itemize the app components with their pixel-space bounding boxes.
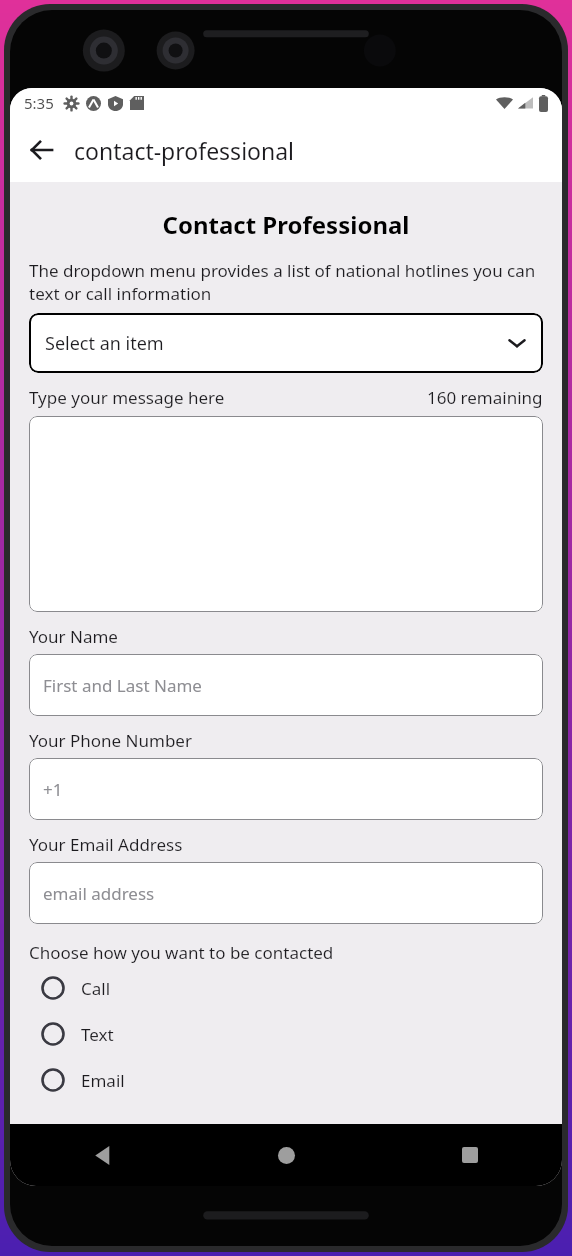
button[interactable] xyxy=(29,416,543,612)
staticText: 160 remaining xyxy=(427,386,543,409)
staticText: First and Last Name xyxy=(43,674,202,697)
staticText: email address xyxy=(43,882,155,905)
staticText: contact-professional xyxy=(74,135,295,166)
staticText: Type your message here xyxy=(29,386,225,409)
staticText: Your Name xyxy=(29,625,118,648)
staticText: Your Phone Number xyxy=(29,729,192,752)
button[interactable]: Back xyxy=(18,126,66,174)
staticText: Text xyxy=(81,1023,114,1046)
button[interactable]: Call xyxy=(29,970,543,1006)
button[interactable]: Recents xyxy=(378,1124,562,1186)
staticText: Select an item xyxy=(45,331,164,356)
staticText: Contact Professional xyxy=(29,208,543,241)
staticText: Your Email Address xyxy=(29,833,183,856)
button[interactable]: +1 xyxy=(29,758,543,820)
staticText: The dropdown menu provides a list of nat… xyxy=(29,259,543,305)
staticText: 5:35 xyxy=(24,93,54,113)
staticText: Email xyxy=(81,1069,125,1092)
staticText: +1 xyxy=(43,778,63,801)
button[interactable]: Home xyxy=(194,1124,378,1186)
staticText: Call xyxy=(81,977,111,1000)
staticText: Choose how you want to be contacted xyxy=(29,941,334,964)
button[interactable]: First and Last Name xyxy=(29,654,543,716)
button[interactable]: Back xyxy=(10,1124,194,1186)
button[interactable]: Text xyxy=(29,1016,543,1052)
button[interactable]: Select an item xyxy=(29,313,543,373)
button[interactable]: email address xyxy=(29,862,543,924)
button[interactable]: Email xyxy=(29,1062,543,1098)
